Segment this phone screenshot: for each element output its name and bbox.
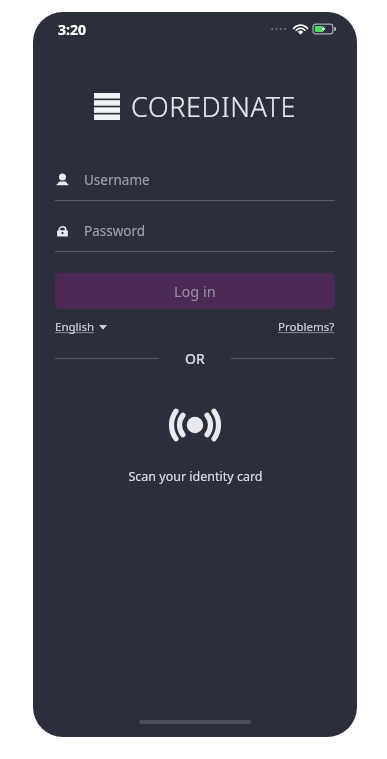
button[interactable]: English [55, 319, 107, 335]
button[interactable]: Password [55, 222, 335, 252]
staticText: Log in [174, 281, 216, 301]
staticText: 3:20 [58, 20, 86, 39]
staticText: Scan your identity card [128, 468, 263, 485]
staticText: Password [84, 222, 146, 240]
button[interactable]: Scan your identity card [157, 396, 233, 454]
staticText: English [55, 319, 95, 335]
button[interactable]: Log in [55, 273, 335, 309]
button[interactable]: Username [55, 171, 335, 201]
staticText: OR [185, 349, 205, 368]
staticText: Username [84, 171, 150, 189]
staticText: COREDINATE [131, 88, 297, 125]
button[interactable]: Problems? [278, 319, 335, 335]
